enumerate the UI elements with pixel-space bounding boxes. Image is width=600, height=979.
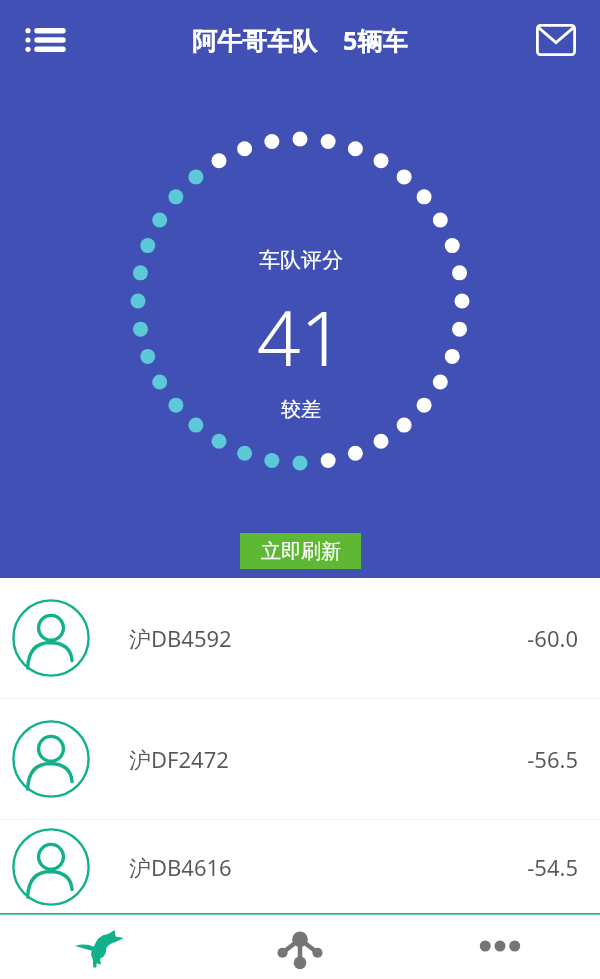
button[interactable]: Home (0, 913, 200, 979)
staticText: 沪DB4616 (129, 852, 232, 882)
staticText: 沪DB4592 (129, 623, 232, 653)
button[interactable]: Menu (16, 12, 72, 68)
button[interactable]: 沪DB4616 (0, 820, 600, 913)
button[interactable]: More (400, 913, 600, 979)
staticText: 阿牛哥车队 5辆车 (192, 23, 408, 57)
staticText: -56.5 (527, 744, 578, 774)
staticText: -54.5 (527, 852, 578, 882)
button[interactable]: Messages (530, 14, 582, 66)
staticText: 立即刷新 (261, 539, 341, 564)
staticText: -60.0 (527, 623, 578, 653)
staticText: 沪DF2472 (129, 744, 229, 774)
button[interactable]: 立即刷新 (240, 533, 361, 569)
staticText: 较差 (281, 397, 321, 422)
button[interactable]: 沪DF2472 (0, 699, 600, 819)
staticText: 41 (257, 285, 344, 389)
button[interactable]: Network (200, 913, 400, 979)
staticText: 车队评分 (259, 247, 343, 273)
button[interactable]: 沪DB4592 (0, 578, 600, 698)
